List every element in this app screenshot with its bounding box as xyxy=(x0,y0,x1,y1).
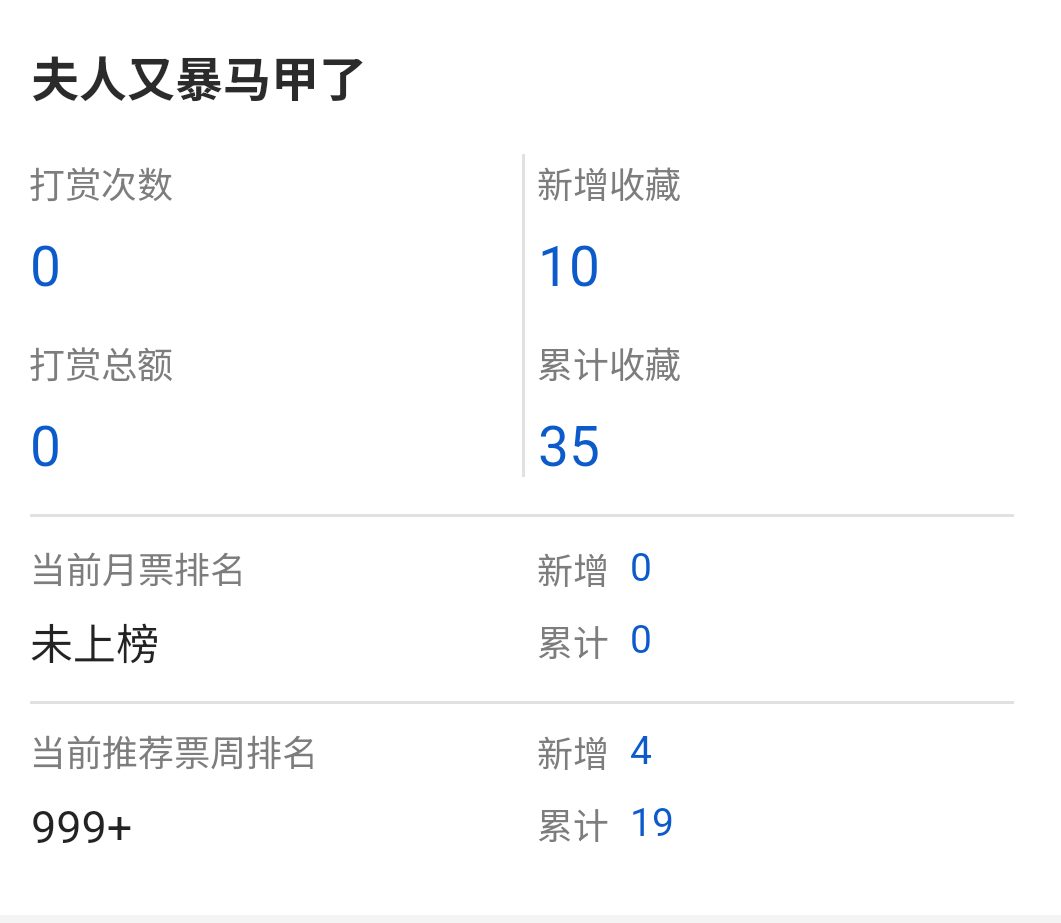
staticText: 当前推荐票周排名 xyxy=(30,724,319,776)
button[interactable]: 当前推荐票周排名 999+ 新增 4 累计 19 xyxy=(0,700,1061,884)
staticText: 35 xyxy=(538,415,600,479)
staticText: 999+ xyxy=(31,801,133,854)
staticText: 0 xyxy=(30,235,61,299)
button[interactable]: 累计收藏 35 xyxy=(536,330,1016,500)
staticText: 19 xyxy=(630,800,674,846)
staticText: 累计 xyxy=(537,614,610,666)
button[interactable]: 新增收藏 10 xyxy=(536,150,1016,320)
staticText: 打赏次数 xyxy=(29,156,174,208)
staticText: 新增 xyxy=(537,542,610,594)
staticText: 4 xyxy=(630,728,652,774)
staticText: 未上榜 xyxy=(30,610,159,672)
staticText: 新增 xyxy=(537,725,610,777)
button[interactable]: 打赏次数 0 xyxy=(28,150,508,320)
staticText: 夫人又暴马甲了 xyxy=(31,41,368,111)
staticText: 当前月票排名 xyxy=(30,541,247,593)
button[interactable]: 作品 夫人又暴马甲了 xyxy=(29,36,389,108)
staticText: 打赏总额 xyxy=(29,336,174,388)
staticText: 0 xyxy=(630,617,652,663)
staticText: 10 xyxy=(538,235,600,299)
button[interactable]: 当前月票排名 未上榜 新增 0 累计 0 xyxy=(0,517,1061,701)
staticText: 0 xyxy=(630,545,652,591)
staticText: 累计收藏 xyxy=(537,336,682,388)
staticText: 累计 xyxy=(537,797,610,849)
button[interactable]: 打赏总额 0 xyxy=(28,330,508,500)
staticText: 新增收藏 xyxy=(537,156,682,208)
staticText: 0 xyxy=(30,415,61,479)
